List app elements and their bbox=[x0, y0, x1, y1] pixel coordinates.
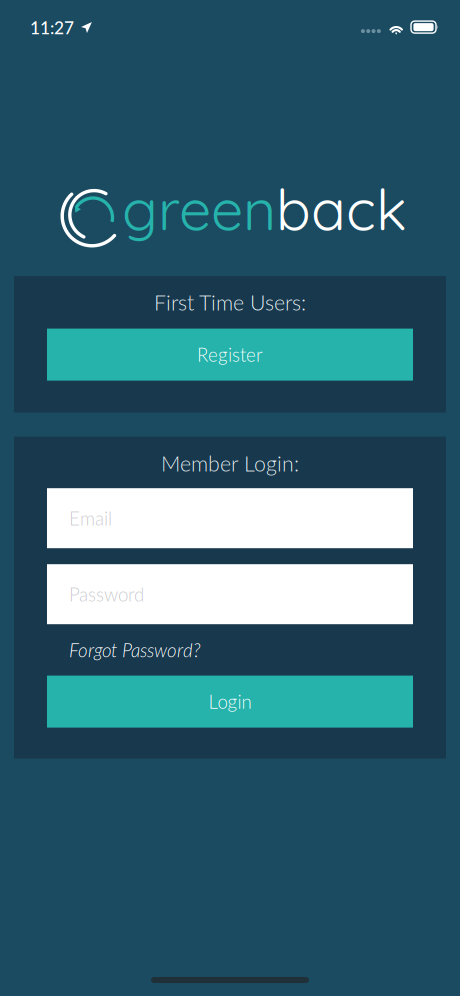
staticText: Email bbox=[69, 507, 112, 529]
staticText: back bbox=[276, 173, 407, 245]
button[interactable]: Email bbox=[47, 488, 413, 548]
staticText: Member Login: bbox=[161, 450, 299, 476]
button[interactable]: Password bbox=[47, 564, 413, 624]
staticText: Register bbox=[197, 343, 263, 366]
staticText: First Time Users: bbox=[154, 289, 306, 315]
staticText: Forgot Password? bbox=[69, 639, 201, 661]
button[interactable]: Forgot Password? bbox=[47, 639, 201, 661]
staticText: green bbox=[122, 173, 276, 245]
staticText: Login bbox=[208, 690, 251, 713]
staticText: Password bbox=[69, 583, 144, 605]
button[interactable]: Register bbox=[47, 329, 413, 381]
staticText: 11:27 bbox=[30, 17, 74, 38]
button[interactable]: Login bbox=[47, 676, 413, 728]
